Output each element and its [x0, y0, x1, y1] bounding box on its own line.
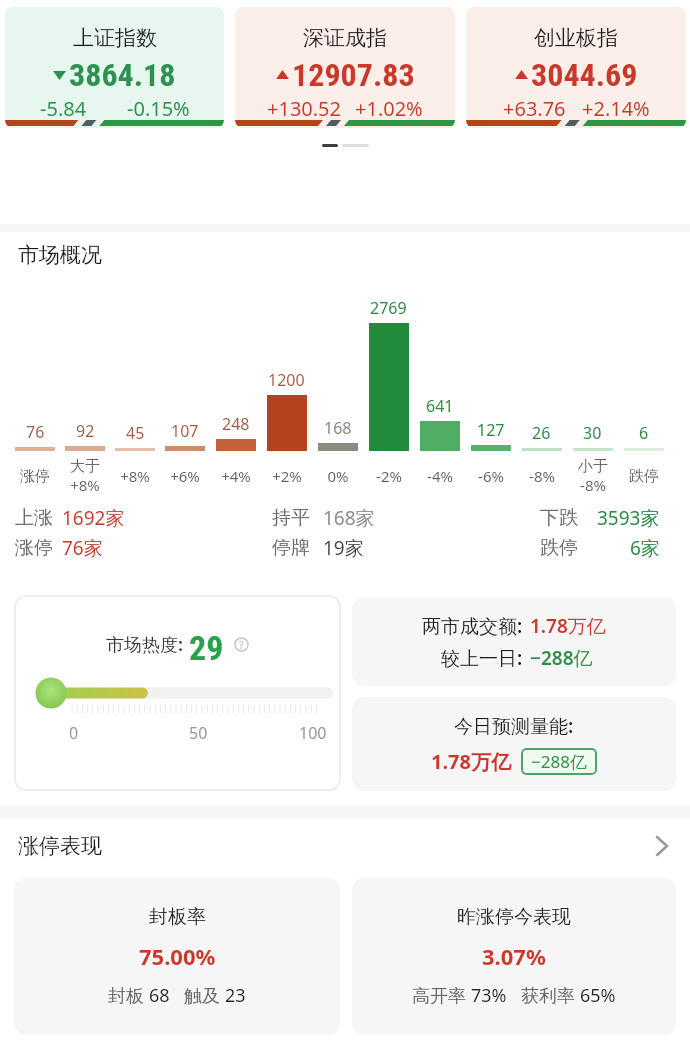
staticText: 创业板指 [534, 25, 618, 51]
button[interactable]: 两市成交额: [352, 597, 676, 686]
staticText: 市场热度: [106, 632, 183, 657]
staticText: 3.07% [482, 941, 546, 971]
staticText: -6% [478, 466, 504, 486]
staticText: 50 [189, 722, 208, 744]
staticText: 3864.18 [69, 56, 176, 94]
staticText: 涨停 [20, 467, 50, 486]
staticText: -8% [529, 466, 555, 486]
staticText: 下跌 [540, 506, 578, 530]
staticText: 73% [471, 983, 507, 1008]
staticText: 1692家 [62, 505, 125, 531]
button[interactable]: 昨涨停今表现 [352, 878, 676, 1035]
staticText: 29 [189, 628, 224, 660]
button[interactable]: 市场热度: [14, 595, 341, 791]
button[interactable]: 深证成指 [235, 7, 455, 128]
staticText: 涨停表现 [18, 833, 102, 859]
staticText: +1.02% [355, 95, 423, 122]
staticText: 两市成交额: [422, 613, 523, 639]
staticText: 停牌 [272, 536, 310, 560]
staticText: 3593家 [597, 505, 660, 531]
staticText: 26 [532, 422, 551, 444]
staticText: 1.78万亿 [431, 748, 511, 775]
staticText: 76家 [62, 535, 103, 561]
staticText: 12907.83 [292, 56, 415, 94]
staticText: -0.15% [127, 95, 190, 122]
staticText: 127 [477, 419, 505, 441]
staticText: 23 [225, 983, 246, 1008]
staticText: -4% [427, 466, 453, 486]
staticText: 大于 +8% [70, 457, 100, 495]
staticText: 较上一日: [441, 645, 523, 671]
staticText: 75.00% [139, 941, 216, 971]
button[interactable]: 封板率 [14, 878, 340, 1035]
staticText: 持平 [272, 506, 310, 530]
staticText: 封板 [108, 983, 149, 1008]
staticText: −288亿 [531, 750, 587, 773]
staticText: 触及 [184, 983, 225, 1008]
button[interactable]: 上证指数 [5, 7, 224, 128]
staticText: 6家 [630, 535, 660, 561]
staticText: +130.52 [267, 95, 341, 122]
button[interactable]: 创业板指 [466, 7, 686, 128]
staticText: 168 [324, 417, 352, 439]
staticText: 76 [26, 421, 45, 443]
staticText: 获利率 [521, 983, 580, 1008]
staticText: +2.14% [582, 95, 650, 122]
staticText: 深证成指 [303, 25, 387, 51]
staticText: 168家 [323, 505, 375, 531]
button[interactable]: 涨停表现 [0, 830, 690, 862]
staticText: +8% [120, 466, 150, 486]
staticText: 30 [583, 422, 602, 444]
staticText: 今日预测量能: [454, 713, 574, 739]
staticText: 1.78万亿 [530, 613, 606, 639]
button[interactable]: 今日预测量能: [352, 697, 676, 791]
staticText: -5.84 [40, 95, 87, 122]
staticText: 19家 [323, 535, 364, 561]
staticText: +2% [272, 466, 302, 486]
staticText: 68 [149, 983, 170, 1008]
staticText: 跌停 [629, 467, 659, 486]
staticText: 0 [69, 722, 79, 744]
staticText: 92 [76, 420, 95, 442]
staticText: 涨停 [15, 536, 53, 560]
staticText: +6% [170, 466, 200, 486]
staticText: 0% [327, 466, 349, 486]
staticText: 3044.69 [531, 56, 638, 94]
staticText: −288亿 [530, 645, 593, 671]
staticText: ? [239, 638, 244, 652]
staticText: 2769 [370, 297, 407, 319]
staticText: +4% [221, 466, 251, 486]
staticText: +63.76 [503, 95, 566, 122]
staticText: 上证指数 [73, 25, 157, 51]
staticText: 1200 [268, 369, 305, 391]
staticText: -2% [376, 466, 402, 486]
staticText: 市场概况 [18, 242, 102, 268]
staticText: 65% [580, 983, 616, 1008]
staticText: 上涨 [15, 506, 53, 530]
staticText: 小于 -8% [578, 457, 608, 495]
staticText: 107 [171, 420, 199, 442]
staticText: 248 [222, 413, 250, 435]
staticText: 封板率 [149, 905, 206, 929]
staticText: 641 [426, 395, 454, 417]
staticText: 昨涨停今表现 [457, 905, 571, 929]
staticText: 高开率 [412, 983, 471, 1008]
staticText: 100 [299, 722, 327, 744]
staticText: 跌停 [540, 536, 578, 560]
staticText: 45 [126, 422, 145, 444]
staticText: 6 [639, 422, 649, 444]
